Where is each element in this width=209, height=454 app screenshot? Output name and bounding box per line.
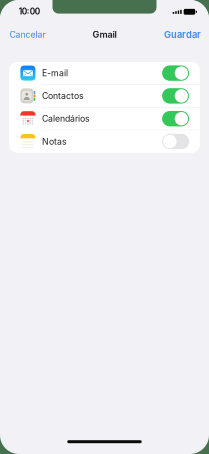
staticText: E-mail bbox=[42, 68, 68, 78]
staticText: Gmail bbox=[92, 29, 116, 40]
staticText: Calendários bbox=[42, 113, 90, 124]
button[interactable]: Guardar bbox=[154, 25, 209, 44]
button[interactable]: Cancelar bbox=[0, 25, 55, 44]
staticText: Guardar bbox=[164, 29, 201, 40]
staticText: Cancelar bbox=[9, 29, 45, 40]
button[interactable]: Calendários bbox=[9, 108, 200, 130]
button[interactable]: E-mail bbox=[9, 62, 200, 84]
staticText: Contactos bbox=[42, 91, 84, 101]
staticText: 10:00 bbox=[19, 6, 40, 16]
button[interactable]: Contactos bbox=[9, 85, 200, 107]
staticText: Notas bbox=[42, 136, 67, 147]
button[interactable]: Notas bbox=[9, 130, 200, 153]
